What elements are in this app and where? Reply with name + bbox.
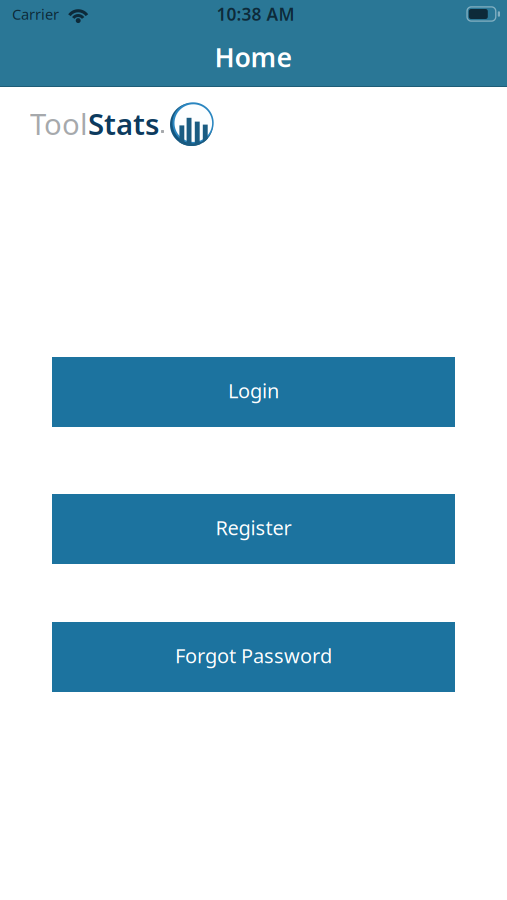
staticText: Home [214,39,292,75]
staticText: Login [228,377,279,404]
staticText: Tool [30,104,88,143]
staticText: Carrier [12,4,59,24]
staticText: Register [215,514,291,541]
staticText: Stats [88,104,159,143]
staticText: 10:38 AM [216,2,294,25]
button[interactable]: Register [52,494,455,564]
button[interactable]: Forgot Password [52,622,455,692]
staticText: Forgot Password [175,642,332,669]
button[interactable]: Login [52,357,455,427]
